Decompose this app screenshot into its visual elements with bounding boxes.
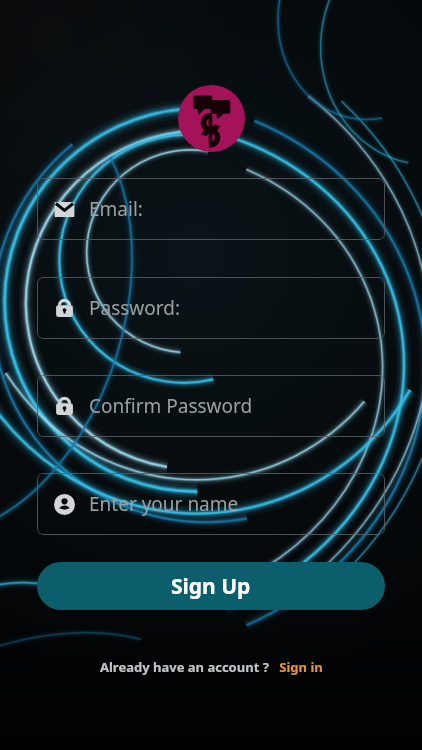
staticText: Enter your name xyxy=(89,491,239,517)
staticText: Password: xyxy=(89,295,181,321)
other: Confirm password xyxy=(54,396,75,417)
staticText: Email: xyxy=(89,196,143,222)
button[interactable]: Sign in xyxy=(279,658,323,676)
other: Email xyxy=(54,199,75,220)
other: Name xyxy=(54,494,75,515)
button[interactable]: Password xyxy=(37,277,385,339)
staticText: Sign in xyxy=(279,658,323,676)
staticText: Already have an account ? xyxy=(100,658,269,676)
button[interactable]: Name xyxy=(37,473,385,535)
button[interactable]: Email xyxy=(37,178,385,240)
button[interactable]: Confirm password xyxy=(37,375,385,437)
button[interactable]: Sign Up xyxy=(37,562,385,610)
staticText: Confirm Password xyxy=(89,393,253,419)
staticText: Sign Up xyxy=(171,572,251,601)
other: Password xyxy=(54,298,75,319)
